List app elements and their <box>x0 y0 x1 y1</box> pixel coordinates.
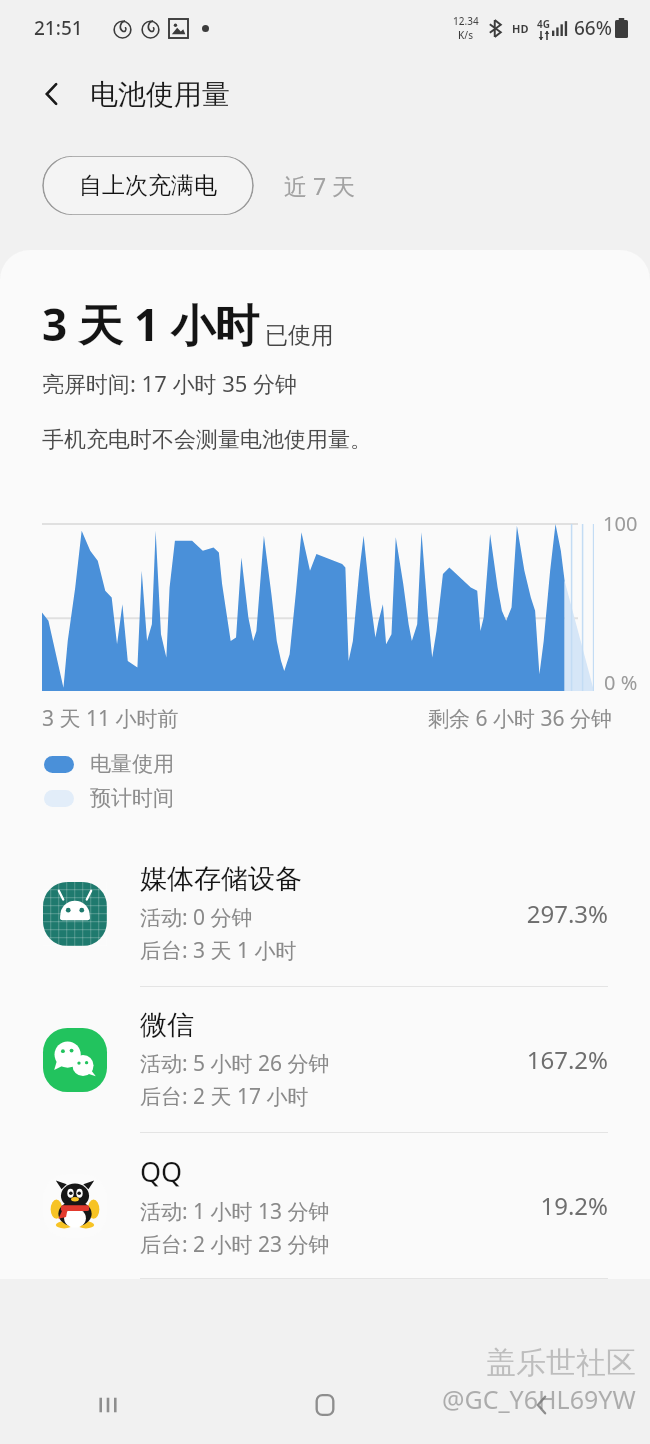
staticText: 电池使用量 <box>90 77 230 112</box>
button[interactable]: 近 7 天 <box>254 155 386 216</box>
staticText: 297.3% <box>526 897 608 930</box>
staticText: 活动: 5 小时 26 分钟 <box>140 1049 330 1078</box>
staticText: 已使用 <box>265 321 334 350</box>
button[interactable]: 自上次充满电 <box>42 156 254 215</box>
staticText: K/s <box>458 28 474 42</box>
staticText: 活动: 0 分钟 <box>140 903 253 932</box>
staticText: 电量使用 <box>90 751 174 777</box>
staticText: 后台: 3 天 1 小时 <box>140 936 297 965</box>
button[interactable]: Back <box>30 72 74 116</box>
staticText: 自上次充满电 <box>79 171 217 200</box>
staticText: 100 <box>603 510 638 537</box>
staticText: 167.2% <box>526 1043 608 1076</box>
button[interactable]: 媒体存储设备 <box>0 841 650 986</box>
staticText: 亮屏时间: 17 小时 35 分钟 <box>42 368 298 398</box>
staticText: 66% <box>574 15 612 41</box>
button[interactable]: Home <box>216 1366 433 1444</box>
staticText: 媒体存储设备 <box>140 862 302 896</box>
button[interactable]: QQ <box>0 1133 650 1278</box>
staticText: 活动: 1 小时 13 分钟 <box>140 1197 330 1226</box>
staticText: 3 天 1 小时 <box>42 294 259 354</box>
staticText: 4G <box>537 17 550 31</box>
staticText: 剩余 6 小时 36 分钟 <box>428 704 612 733</box>
staticText: 0 % <box>604 669 638 696</box>
staticText: @GC_Y6HL69YW <box>442 1382 636 1416</box>
staticText: 21:51 <box>34 15 83 41</box>
button[interactable]: 微信 <box>0 987 650 1132</box>
staticText: 近 7 天 <box>284 170 356 201</box>
staticText: QQ <box>140 1153 183 1190</box>
staticText: 手机充电时不会测量电池使用量。 <box>42 426 372 454</box>
staticText: 3 天 11 小时前 <box>42 704 179 733</box>
staticText: 盖乐世社区 <box>486 1344 636 1382</box>
staticText: 后台: 2 天 17 小时 <box>140 1082 309 1111</box>
button[interactable]: Recent apps <box>0 1366 216 1444</box>
button[interactable]: Back <box>433 1366 650 1444</box>
staticText: 19.2% <box>540 1189 608 1222</box>
staticText: 微信 <box>140 1008 194 1042</box>
staticText: 预计时间 <box>90 785 174 811</box>
staticText: 后台: 2 小时 23 分钟 <box>140 1230 330 1259</box>
staticText: HD <box>512 21 529 36</box>
staticText: 12.34 <box>453 14 479 28</box>
